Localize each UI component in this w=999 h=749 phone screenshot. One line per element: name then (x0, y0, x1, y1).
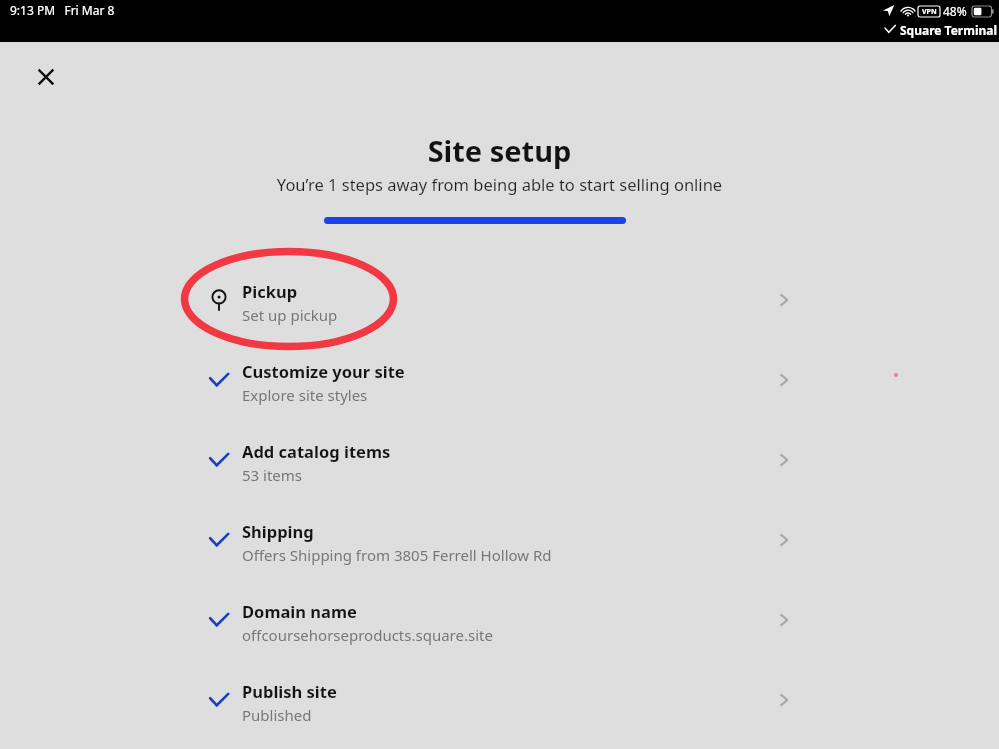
staticText: 48% (943, 3, 967, 19)
staticText: VPN (922, 7, 937, 17)
staticText: Domain name (242, 600, 357, 622)
button[interactable]: Domain name (0, 580, 999, 660)
staticText: Add catalog items (242, 440, 391, 462)
button[interactable]: Customize your site (0, 340, 999, 420)
staticText: Site setup (0, 131, 999, 170)
button[interactable]: Close (22, 53, 70, 101)
staticText: Publish site (242, 680, 337, 702)
button[interactable]: Add catalog items (0, 420, 999, 500)
button[interactable]: Shipping (0, 500, 999, 580)
staticText: Set up pickup (242, 305, 338, 325)
staticText: Customize your site (242, 360, 405, 382)
staticText: Published (242, 705, 312, 725)
button[interactable]: Pickup (0, 260, 999, 340)
staticText: Offers Shipping from 3805 Ferrell Hollow… (242, 545, 552, 565)
staticText: You’re 1 steps away from being able to s… (0, 173, 999, 195)
staticText: Square Terminal (900, 22, 998, 38)
staticText: 53 items (242, 465, 303, 485)
staticText: Pickup (242, 280, 298, 302)
staticText: Explore site styles (242, 385, 368, 405)
button[interactable]: Publish site (0, 660, 999, 740)
staticText: 9:13 PM Fri Mar 8 (10, 2, 115, 18)
staticText: Shipping (242, 520, 314, 542)
staticText: offcoursehorseproducts.square.site (242, 625, 493, 645)
